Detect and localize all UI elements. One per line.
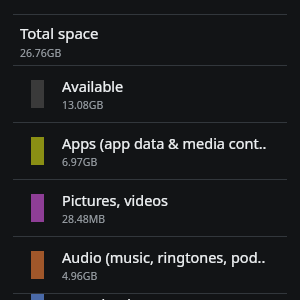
staticText: 26.76GB	[20, 46, 62, 60]
button[interactable]: Available	[0, 66, 300, 122]
staticText: 4.96GB	[62, 269, 98, 283]
staticText: Apps (app data & media cont..	[62, 133, 267, 153]
button[interactable]: Apps (app data & media cont..	[0, 123, 300, 179]
staticText: Available	[62, 76, 124, 96]
staticText: Audio (music, ringtones, pod..	[62, 247, 266, 267]
staticText: 6.97GB	[62, 155, 98, 169]
button[interactable]: Downloads	[0, 294, 300, 300]
staticText: Downloads	[62, 294, 138, 300]
staticText: 28.48MB	[62, 212, 106, 226]
staticText: Pictures, videos	[62, 190, 169, 210]
button[interactable]: Total space	[0, 15, 300, 65]
staticText: Total space	[20, 23, 99, 43]
button[interactable]: Pictures, videos	[0, 180, 300, 236]
button[interactable]: Audio (music, ringtones, pod..	[0, 237, 300, 293]
staticText: 13.08GB	[62, 98, 104, 112]
